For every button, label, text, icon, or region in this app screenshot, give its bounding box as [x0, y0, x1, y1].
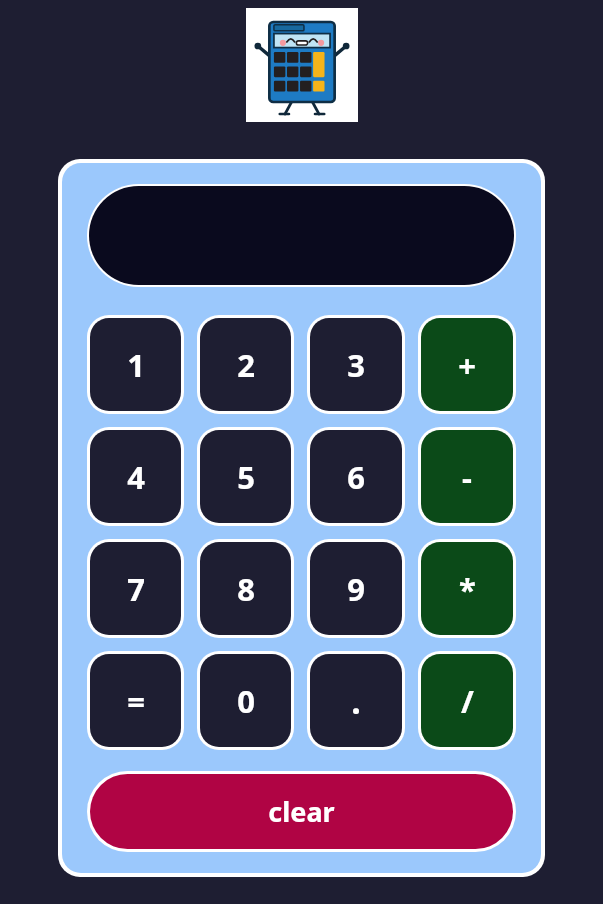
button[interactable]: 5 [200, 430, 291, 523]
staticText: clear [268, 793, 335, 830]
staticText: 9 [347, 568, 365, 610]
button[interactable]: 1 [90, 318, 181, 411]
button[interactable]: + [421, 318, 513, 411]
button[interactable]: 2 [200, 318, 291, 411]
button[interactable]: 4 [90, 430, 181, 523]
button[interactable]: 8 [200, 542, 291, 635]
button[interactable]: * [421, 542, 513, 635]
button[interactable]: - [421, 430, 513, 523]
button[interactable]: Result display [89, 186, 514, 285]
staticText: 2 [237, 344, 255, 386]
staticText: = [127, 680, 145, 722]
button[interactable]: = [90, 654, 181, 747]
staticText: 1 [127, 344, 145, 386]
staticText: - [462, 456, 472, 498]
staticText: 6 [347, 456, 365, 498]
button[interactable]: 9 [310, 542, 402, 635]
staticText: / [461, 680, 474, 722]
staticText: 7 [127, 568, 145, 610]
button[interactable]: Calculator logo [246, 8, 358, 122]
button[interactable]: clear [90, 774, 513, 849]
button[interactable]: / [421, 654, 513, 747]
staticText: 0 [237, 680, 255, 722]
staticText: 5 [237, 456, 255, 498]
button[interactable]: . [310, 654, 402, 747]
staticText: 8 [237, 568, 255, 610]
staticText: 4 [127, 456, 145, 498]
staticText: . [351, 678, 361, 724]
button[interactable]: 0 [200, 654, 291, 747]
button[interactable]: 3 [310, 318, 402, 411]
button[interactable]: 7 [90, 542, 181, 635]
button[interactable]: 6 [310, 430, 402, 523]
staticText: + [458, 344, 476, 386]
staticText: * [459, 568, 476, 610]
staticText: 3 [347, 344, 365, 386]
